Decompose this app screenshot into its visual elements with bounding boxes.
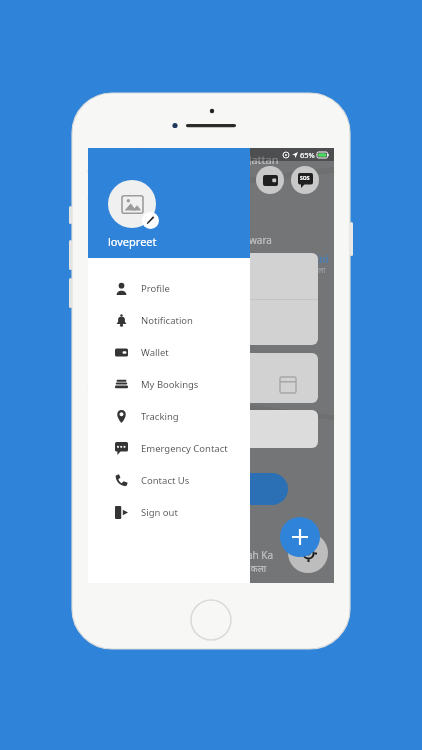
staticText: SOS [300,175,310,182]
button[interactable]: Edit photo [142,212,159,229]
button[interactable]: Wallet [88,336,250,368]
button[interactable]: SOS [291,166,319,194]
staticText: 65% [300,150,315,160]
button[interactable]: Add [280,517,320,557]
button[interactable]: Notification [88,304,250,336]
staticText: Tracking [141,410,179,423]
button[interactable]: My location [288,533,328,573]
staticText: Sign out [141,506,178,519]
staticText: Talwara Jattan [206,152,279,167]
staticText: Emergency Contact [141,442,228,455]
staticText: Wallet [141,346,169,359]
staticText: lovepreet [108,234,157,249]
staticText: rah Ka [243,548,274,562]
staticText: Contact Us [141,474,190,487]
button[interactable]: Tracking [88,400,250,432]
staticText: रह कला [240,562,267,574]
staticText: Lalri [293,388,314,402]
staticText: Talwara [236,233,272,247]
button[interactable]: My Bookings [88,368,250,400]
button[interactable]: Sign out [88,496,250,528]
staticText: ला [318,264,326,275]
button[interactable]: Profile photo [108,180,156,228]
button[interactable]: Wallet [256,166,284,194]
staticText: Notification [141,314,193,327]
button[interactable]: Profile [88,272,250,304]
staticText: ini [316,252,329,266]
staticText: Profile [141,282,170,295]
button[interactable]: Emergency Contact [88,432,250,464]
button[interactable] [140,473,288,505]
staticText: My Bookings [141,378,199,391]
button[interactable]: Contact Us [88,464,250,496]
